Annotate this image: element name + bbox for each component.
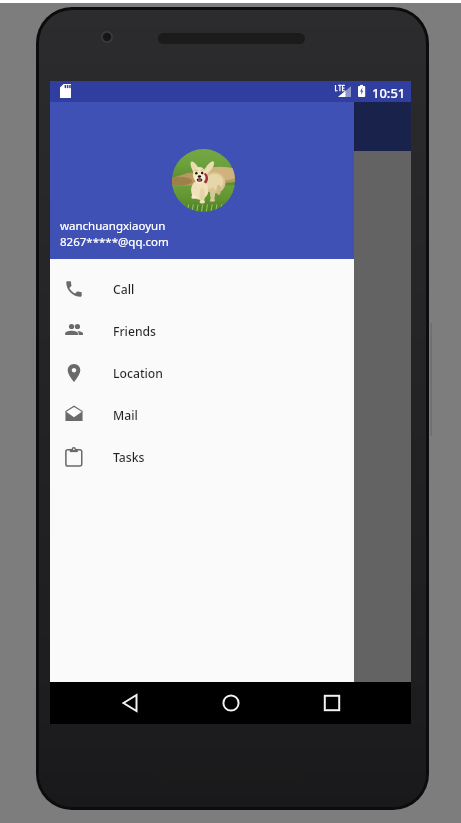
button[interactable]: Location	[50, 352, 354, 394]
staticText: Mail	[113, 407, 138, 424]
button[interactable]: Tasks	[50, 436, 354, 478]
button[interactable]: wanchuangxiaoyun	[50, 102, 354, 259]
staticText: 10:51	[372, 84, 406, 102]
button[interactable]: Recents	[253, 682, 411, 724]
button[interactable]: Friends	[50, 310, 354, 352]
button[interactable]: Home	[208, 682, 253, 724]
staticText: wanchuangxiaoyun	[60, 218, 166, 234]
staticText: Tasks	[113, 449, 145, 466]
button[interactable]: Call	[50, 268, 354, 310]
button[interactable]: Mail	[50, 394, 354, 436]
staticText: Location	[113, 365, 163, 382]
staticText: Friends	[113, 323, 156, 340]
staticText: Call	[113, 281, 135, 298]
staticText: 8267*****@qq.com	[60, 234, 169, 250]
button[interactable]: Back	[50, 682, 208, 724]
